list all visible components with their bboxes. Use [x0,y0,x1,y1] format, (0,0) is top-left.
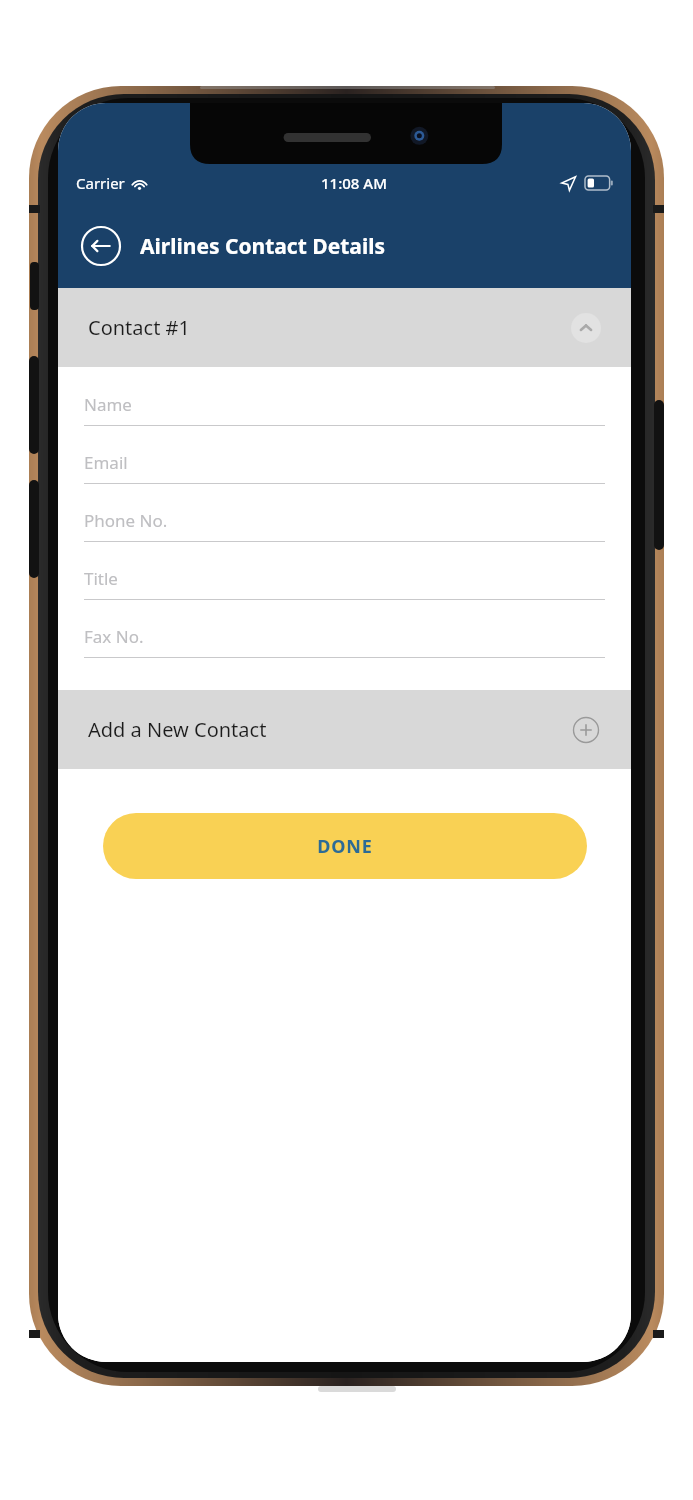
staticText: Add a New Contact [88,716,267,743]
staticText: Phone No. [84,509,168,532]
staticText: Fax No. [84,625,144,648]
staticText: 11:08 AM [321,173,387,193]
staticText: Airlines Contact Details [140,232,385,261]
staticText: Contact #1 [88,314,190,341]
button[interactable]: Add a New Contact [58,690,631,769]
staticText: Carrier [76,173,125,193]
staticText: Title [84,567,118,590]
staticText: DONE [317,834,373,859]
staticText: Name [84,393,132,416]
button[interactable]: DONE [103,813,587,879]
other: Collapse [571,313,601,343]
button[interactable]: Contact #1 [58,288,631,367]
staticText: Email [84,451,128,474]
button[interactable]: Back [80,225,122,267]
other: Add contact [571,715,601,745]
